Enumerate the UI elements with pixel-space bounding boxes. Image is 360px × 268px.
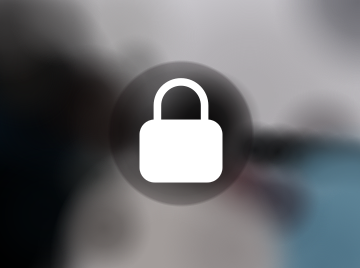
button[interactable]: Locked (0, 0, 360, 268)
